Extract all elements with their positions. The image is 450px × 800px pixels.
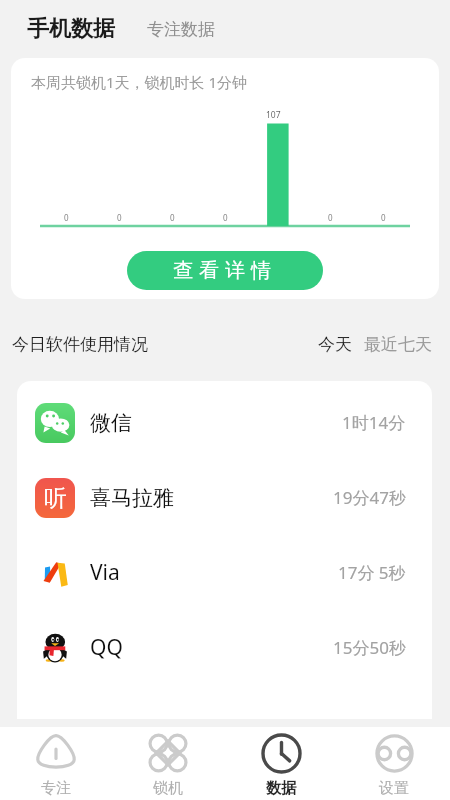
- staticText: 微信: [90, 410, 132, 436]
- staticText: 专注: [41, 779, 71, 798]
- staticText: 数据: [266, 779, 296, 798]
- button[interactable]: 听: [17, 460, 432, 535]
- staticText: 0: [117, 212, 122, 223]
- button[interactable]: 今天: [318, 334, 352, 355]
- button[interactable]: Via: [17, 535, 432, 610]
- staticText: Via: [90, 558, 120, 587]
- button[interactable]: 锁机: [112, 727, 224, 800]
- staticText: 最近七天: [364, 334, 432, 355]
- staticText: 今天: [318, 334, 352, 355]
- staticText: 今日软件使用情况: [12, 334, 148, 355]
- staticText: 喜马拉雅: [90, 485, 174, 511]
- button[interactable]: 设置: [337, 727, 450, 800]
- staticText: 专注数据: [147, 19, 215, 40]
- staticText: QQ: [90, 633, 123, 662]
- button[interactable]: 微信: [17, 385, 432, 460]
- button[interactable]: 数据: [224, 727, 337, 800]
- staticText: 设置: [379, 779, 409, 798]
- staticText: 0: [223, 212, 228, 223]
- staticText: 0: [170, 212, 175, 223]
- staticText: 107: [266, 109, 281, 121]
- staticText: 1时14分: [342, 411, 406, 434]
- staticText: 听: [44, 484, 67, 513]
- staticText: 0: [328, 212, 333, 223]
- button[interactable]: 最近七天: [364, 334, 432, 355]
- staticText: 17分 5秒: [338, 561, 406, 584]
- button[interactable]: 查看详情: [127, 251, 323, 290]
- button[interactable]: 专注: [0, 727, 112, 800]
- staticText: 手机数据: [27, 15, 115, 43]
- staticText: 19分47秒: [333, 486, 406, 509]
- staticText: 锁机: [153, 779, 183, 798]
- staticText: 0: [64, 212, 69, 223]
- button[interactable]: 手机数据: [27, 15, 115, 43]
- button[interactable]: QQ: [17, 610, 432, 685]
- other: 设置: [375, 734, 414, 773]
- staticText: 本周共锁机1天，锁机时长 1分钟: [31, 72, 248, 92]
- other: 专注: [36, 734, 76, 769]
- other: 数据: [261, 733, 302, 774]
- staticText: 查看详情: [170, 258, 274, 283]
- staticText: 0: [381, 212, 386, 223]
- button[interactable]: 专注数据: [147, 19, 215, 40]
- staticText: 15分50秒: [333, 636, 406, 659]
- other: 锁机: [149, 734, 187, 772]
